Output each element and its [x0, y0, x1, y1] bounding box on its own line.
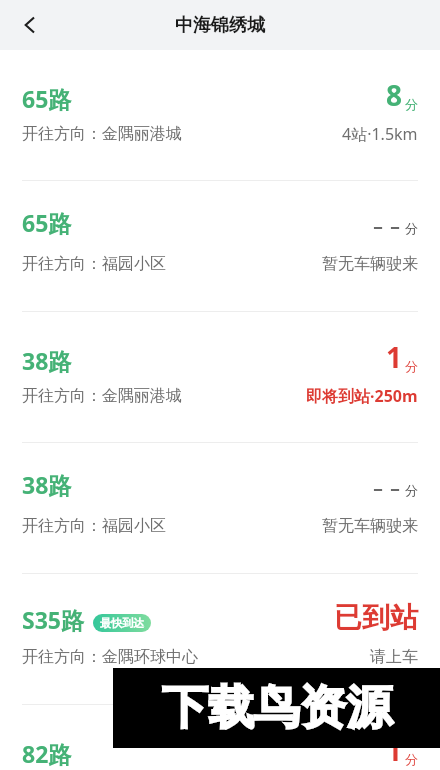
button[interactable]: 65路: [0, 181, 440, 311]
staticText: 38路: [22, 469, 72, 500]
staticText: 4站·1.5km: [342, 123, 418, 145]
staticText: 8: [386, 76, 403, 114]
staticText: S35路: [22, 604, 84, 635]
button[interactable]: 65路: [0, 50, 440, 180]
button[interactable]: S35路: [0, 574, 440, 704]
staticText: 分: [405, 751, 418, 767]
staticText: 分: [405, 358, 418, 374]
button[interactable]: 38路: [0, 443, 440, 573]
staticText: 分: [405, 96, 418, 112]
staticText: 开往方向：金隅丽港城: [22, 386, 182, 406]
staticText: 暂无车辆驶来: [322, 254, 418, 274]
button[interactable]: 82路: [0, 705, 440, 770]
staticText: 中海锦绣城: [175, 14, 265, 37]
staticText: 开往方向：金隅环球中心: [22, 647, 198, 667]
staticText: 暂无车辆驶来: [322, 516, 418, 536]
staticText: 已到站: [334, 600, 418, 635]
staticText: 下载鸟资源: [162, 679, 392, 737]
staticText: －－: [369, 217, 403, 238]
staticText: －－: [369, 479, 403, 500]
staticText: 分: [405, 220, 418, 236]
button[interactable]: 38路: [0, 312, 440, 442]
staticText: 即将到站·250m: [306, 385, 418, 407]
staticText: 82路: [22, 738, 72, 769]
staticText: 1: [386, 338, 403, 376]
button[interactable]: Back: [8, 3, 52, 47]
staticText: 65路: [22, 83, 72, 114]
staticText: 1: [386, 731, 403, 769]
staticText: 分: [405, 482, 418, 498]
staticText: 开往方向：金隅丽港城: [22, 124, 182, 144]
staticText: 开往方向：福园小区: [22, 516, 166, 536]
staticText: 最快到达: [100, 616, 144, 630]
staticText: 38路: [22, 345, 72, 376]
staticText: 开往方向：福园小区: [22, 254, 166, 274]
staticText: 65路: [22, 207, 72, 238]
staticText: 请上车: [370, 647, 418, 667]
